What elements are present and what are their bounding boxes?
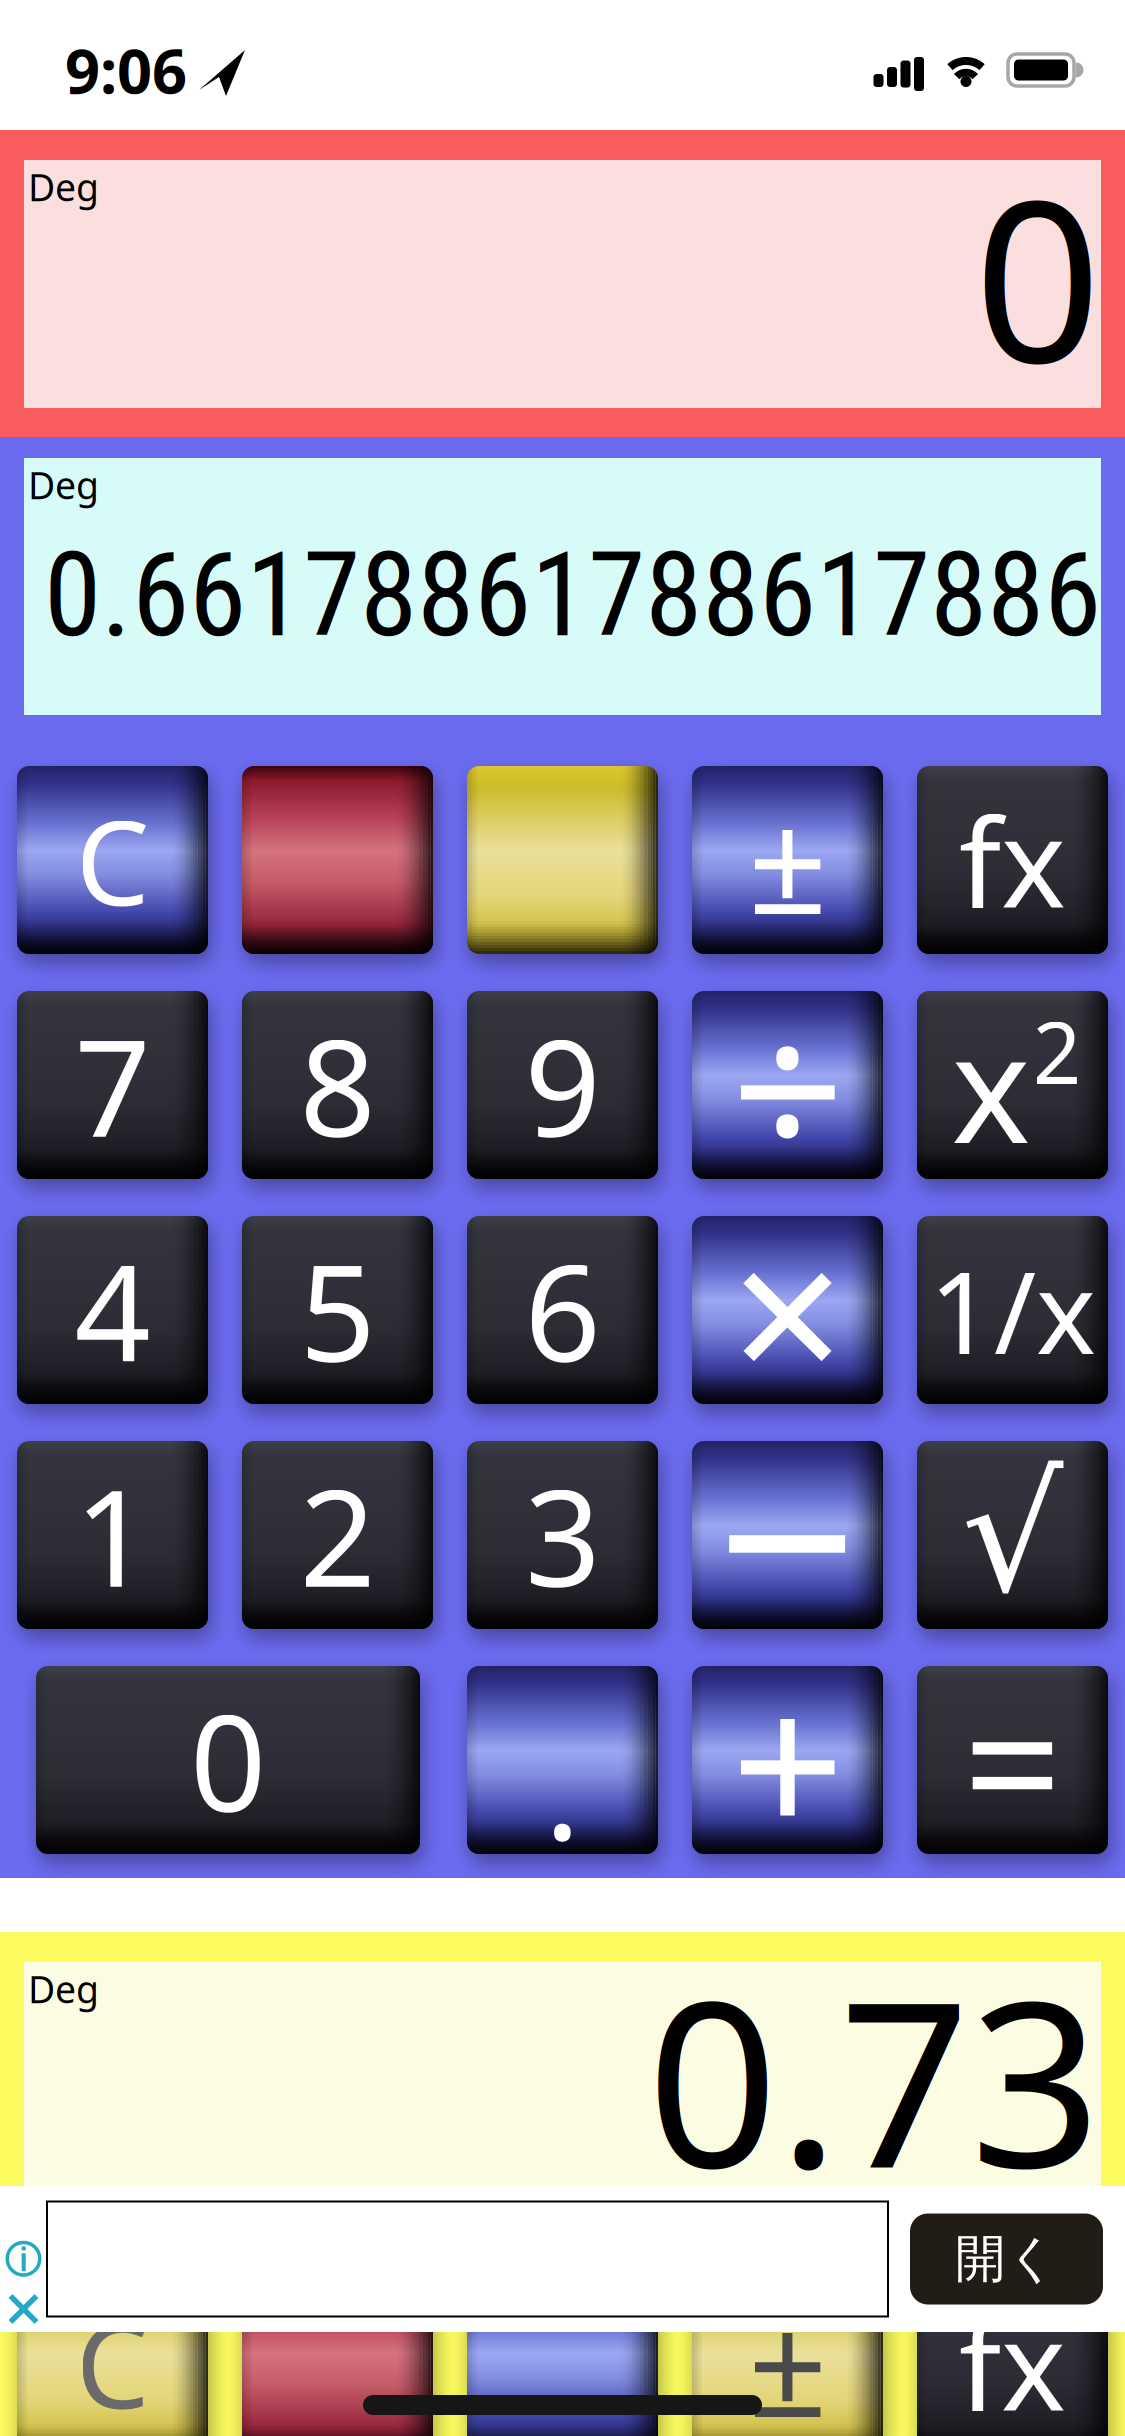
staticText: ± <box>747 767 827 953</box>
button[interactable]: × <box>692 1216 883 1404</box>
button[interactable]: fx <box>917 766 1108 954</box>
button[interactable]: 開く <box>910 2213 1103 2304</box>
staticText: C <box>75 2285 149 2436</box>
staticText: 3 <box>524 1446 600 1624</box>
staticText: = <box>963 1645 1062 1875</box>
staticText: 0 <box>190 1671 266 1849</box>
button[interactable]: C <box>17 766 208 954</box>
staticText: 0 <box>974 128 1101 424</box>
button[interactable]: Ad info <box>5 2237 41 2280</box>
button[interactable]: ÷ <box>692 991 883 1179</box>
button[interactable]: − <box>692 1441 883 1629</box>
button[interactable]: 9 <box>467 991 658 1179</box>
button[interactable]: Red theme <box>242 766 433 954</box>
staticText: − <box>717 1371 858 1699</box>
staticText: 0.66178861788617886 <box>44 527 1101 663</box>
button[interactable]: = <box>917 1666 1108 1854</box>
staticText: 6 <box>524 1221 600 1399</box>
staticText: 1/x <box>929 1235 1096 1385</box>
staticText: ± <box>747 2270 827 2436</box>
button[interactable]: x² <box>917 991 1108 1179</box>
staticText: 8 <box>299 996 375 1174</box>
staticText: . <box>544 1699 580 1877</box>
staticText: C <box>75 782 149 938</box>
button[interactable]: ± <box>692 2269 883 2436</box>
staticText: Deg <box>28 460 99 510</box>
staticText: ÷ <box>730 952 844 1218</box>
button[interactable]: 3 <box>467 1441 658 1629</box>
button[interactable]: 6 <box>467 1216 658 1404</box>
staticText: + <box>730 1627 844 1893</box>
button[interactable]: . <box>467 1666 658 1854</box>
button[interactable]: ± <box>692 766 883 954</box>
staticText: 5 <box>299 1221 375 1399</box>
button[interactable]: + <box>692 1666 883 1854</box>
button[interactable]: 2 <box>242 1441 433 1629</box>
staticText: 2 <box>299 1446 375 1624</box>
button[interactable]: C <box>17 2269 208 2436</box>
button[interactable]: Red theme <box>242 2269 433 2436</box>
staticText: 9 <box>524 996 600 1174</box>
staticText: 2 <box>1032 994 1081 1108</box>
button[interactable]: Yellow theme <box>467 766 658 954</box>
button[interactable]: 4 <box>17 1216 208 1404</box>
staticText: 9:06 <box>65 29 187 111</box>
staticText: 4 <box>74 1221 150 1399</box>
button[interactable]: 1 <box>17 1441 208 1629</box>
staticText: 7 <box>74 996 150 1174</box>
staticText: 1 <box>74 1446 150 1624</box>
staticText: 開く <box>955 2228 1058 2290</box>
button[interactable]: Close ad <box>8 2294 38 2324</box>
staticText: i <box>19 2237 28 2280</box>
staticText: × <box>730 1177 844 1443</box>
staticText: Deg <box>28 162 99 212</box>
staticText: fx <box>959 2282 1066 2436</box>
staticText: fx <box>959 779 1066 941</box>
staticText: x <box>951 986 1030 1184</box>
button[interactable]: Blue theme <box>467 2269 658 2436</box>
button[interactable]: 1/x <box>917 1216 1108 1404</box>
staticText: 0.73 <box>647 1926 1101 2231</box>
button[interactable]: √ <box>917 1441 1108 1629</box>
button[interactable]: 7 <box>17 991 208 1179</box>
button[interactable]: fx <box>917 2269 1108 2436</box>
button[interactable]: 5 <box>242 1216 433 1404</box>
button[interactable]: 8 <box>242 991 433 1179</box>
staticText: √ <box>961 1444 1063 1626</box>
staticText: Deg <box>28 1964 99 2014</box>
button[interactable]: 0 <box>36 1666 420 1854</box>
